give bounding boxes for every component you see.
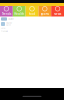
staticText: Local (1, 27, 5, 29)
staticText: Nearby (6, 22, 12, 24)
staticText: Weather (8, 18, 14, 20)
staticText: Food (28, 12, 35, 16)
button[interactable]: Translate (1, 30, 63, 32)
button[interactable]: Weather (1, 17, 63, 21)
staticText: News (54, 12, 61, 16)
button[interactable]: Trends (0, 6, 13, 16)
button[interactable]: Health (13, 6, 26, 16)
button[interactable]: Food (26, 6, 38, 16)
staticText: places (6, 24, 11, 26)
staticText: Trends (2, 12, 11, 16)
button[interactable]: News (51, 6, 64, 16)
staticText: Health (14, 12, 24, 16)
button[interactable]: Nearby (1, 22, 63, 26)
staticText: Sports (41, 12, 49, 16)
button[interactable]: Sports (38, 6, 51, 16)
staticText: Translate (1, 30, 8, 32)
